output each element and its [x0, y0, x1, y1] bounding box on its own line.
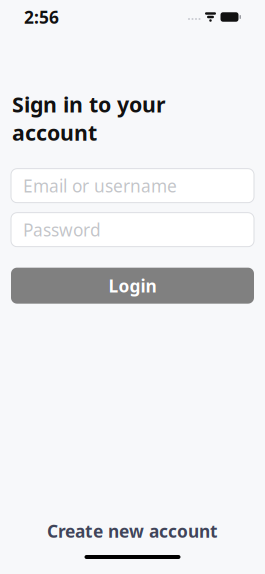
staticText: Sign in to your account	[12, 90, 166, 147]
staticText: Password	[23, 218, 101, 241]
button[interactable]: Login	[11, 268, 254, 304]
staticText: Create new account	[47, 519, 218, 542]
button[interactable]: Create new account	[11, 516, 254, 546]
staticText: 2:56	[24, 5, 59, 28]
staticText: Login	[108, 274, 156, 297]
staticText: Email or username	[23, 174, 177, 197]
